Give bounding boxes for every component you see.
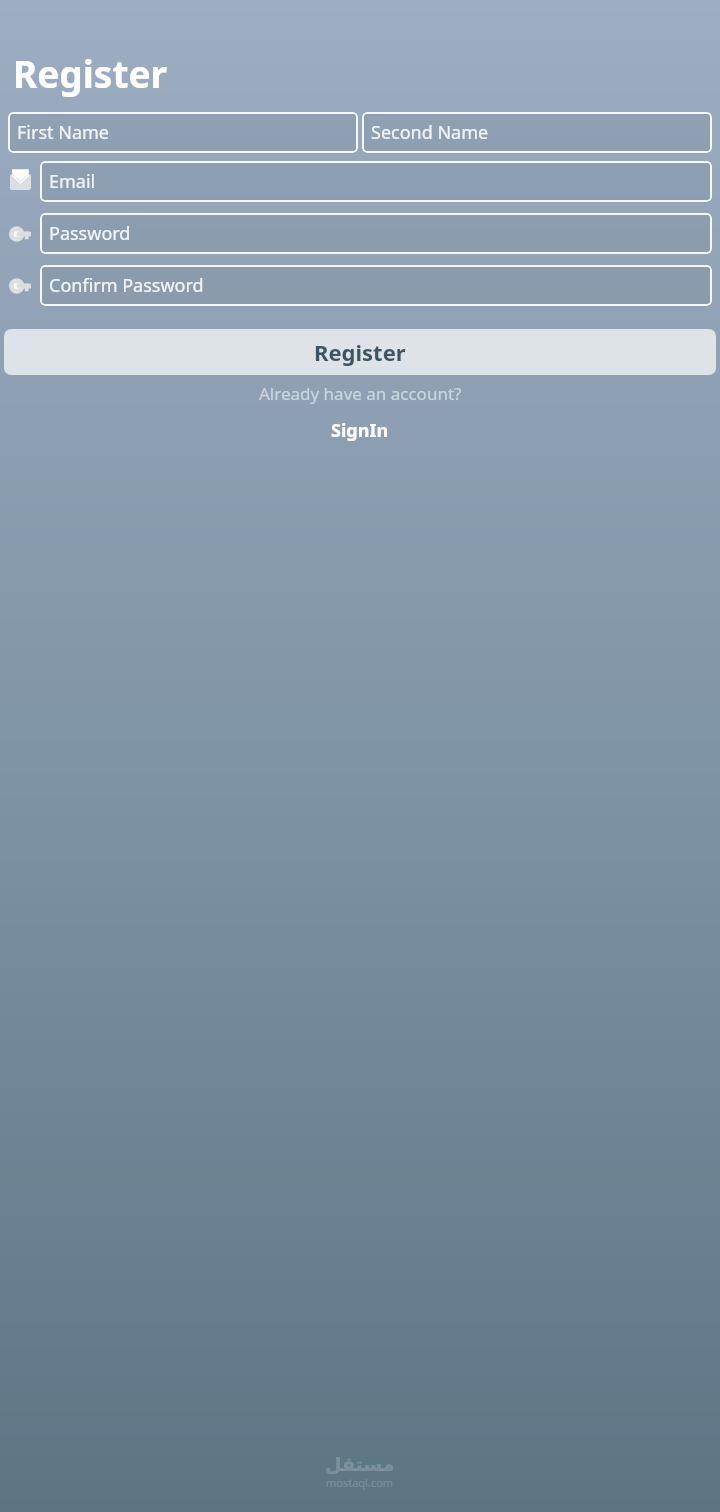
staticText: Confirm Password <box>49 273 204 298</box>
staticText: Second Name <box>371 120 489 145</box>
staticText: مستقل <box>325 1453 395 1475</box>
button[interactable]: Second Name <box>362 112 712 153</box>
button[interactable]: Register <box>4 329 716 375</box>
button[interactable]: Password <box>0 265 40 306</box>
button[interactable]: Email <box>0 161 40 202</box>
staticText: Already have an account? <box>259 382 462 405</box>
staticText: Register <box>314 337 406 367</box>
button[interactable]: SignIn <box>321 415 399 446</box>
button[interactable]: First Name <box>8 112 358 153</box>
staticText: Email <box>49 169 96 194</box>
button[interactable]: Password <box>40 213 712 254</box>
staticText: SignIn <box>331 418 389 443</box>
staticText: Register <box>13 48 168 98</box>
staticText: mostaql.com <box>326 1475 394 1490</box>
staticText: First Name <box>17 120 109 145</box>
button[interactable]: Password <box>0 213 40 254</box>
button[interactable]: Confirm Password <box>40 265 712 306</box>
staticText: Password <box>49 221 131 246</box>
button[interactable]: Email <box>40 161 712 202</box>
